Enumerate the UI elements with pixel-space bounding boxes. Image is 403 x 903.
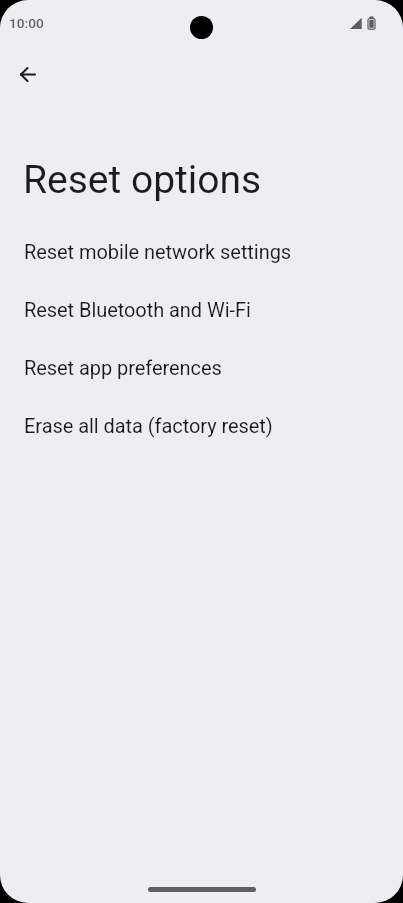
- staticText: Reset options: [23, 157, 262, 203]
- button[interactable]: Navigate up: [4, 50, 52, 98]
- button[interactable]: Reset app preferences: [0, 338, 403, 396]
- button[interactable]: Reset mobile network settings: [0, 222, 403, 280]
- staticText: 10:00: [9, 15, 44, 31]
- staticText: Reset mobile network settings: [24, 240, 292, 263]
- staticText: Erase all data (factory reset): [24, 414, 273, 437]
- button[interactable]: Reset Bluetooth and Wi-Fi: [0, 280, 403, 338]
- button[interactable]: Erase all data (factory reset): [0, 396, 403, 454]
- staticText: Reset app preferences: [24, 356, 222, 379]
- staticText: Reset Bluetooth and Wi-Fi: [24, 298, 251, 321]
